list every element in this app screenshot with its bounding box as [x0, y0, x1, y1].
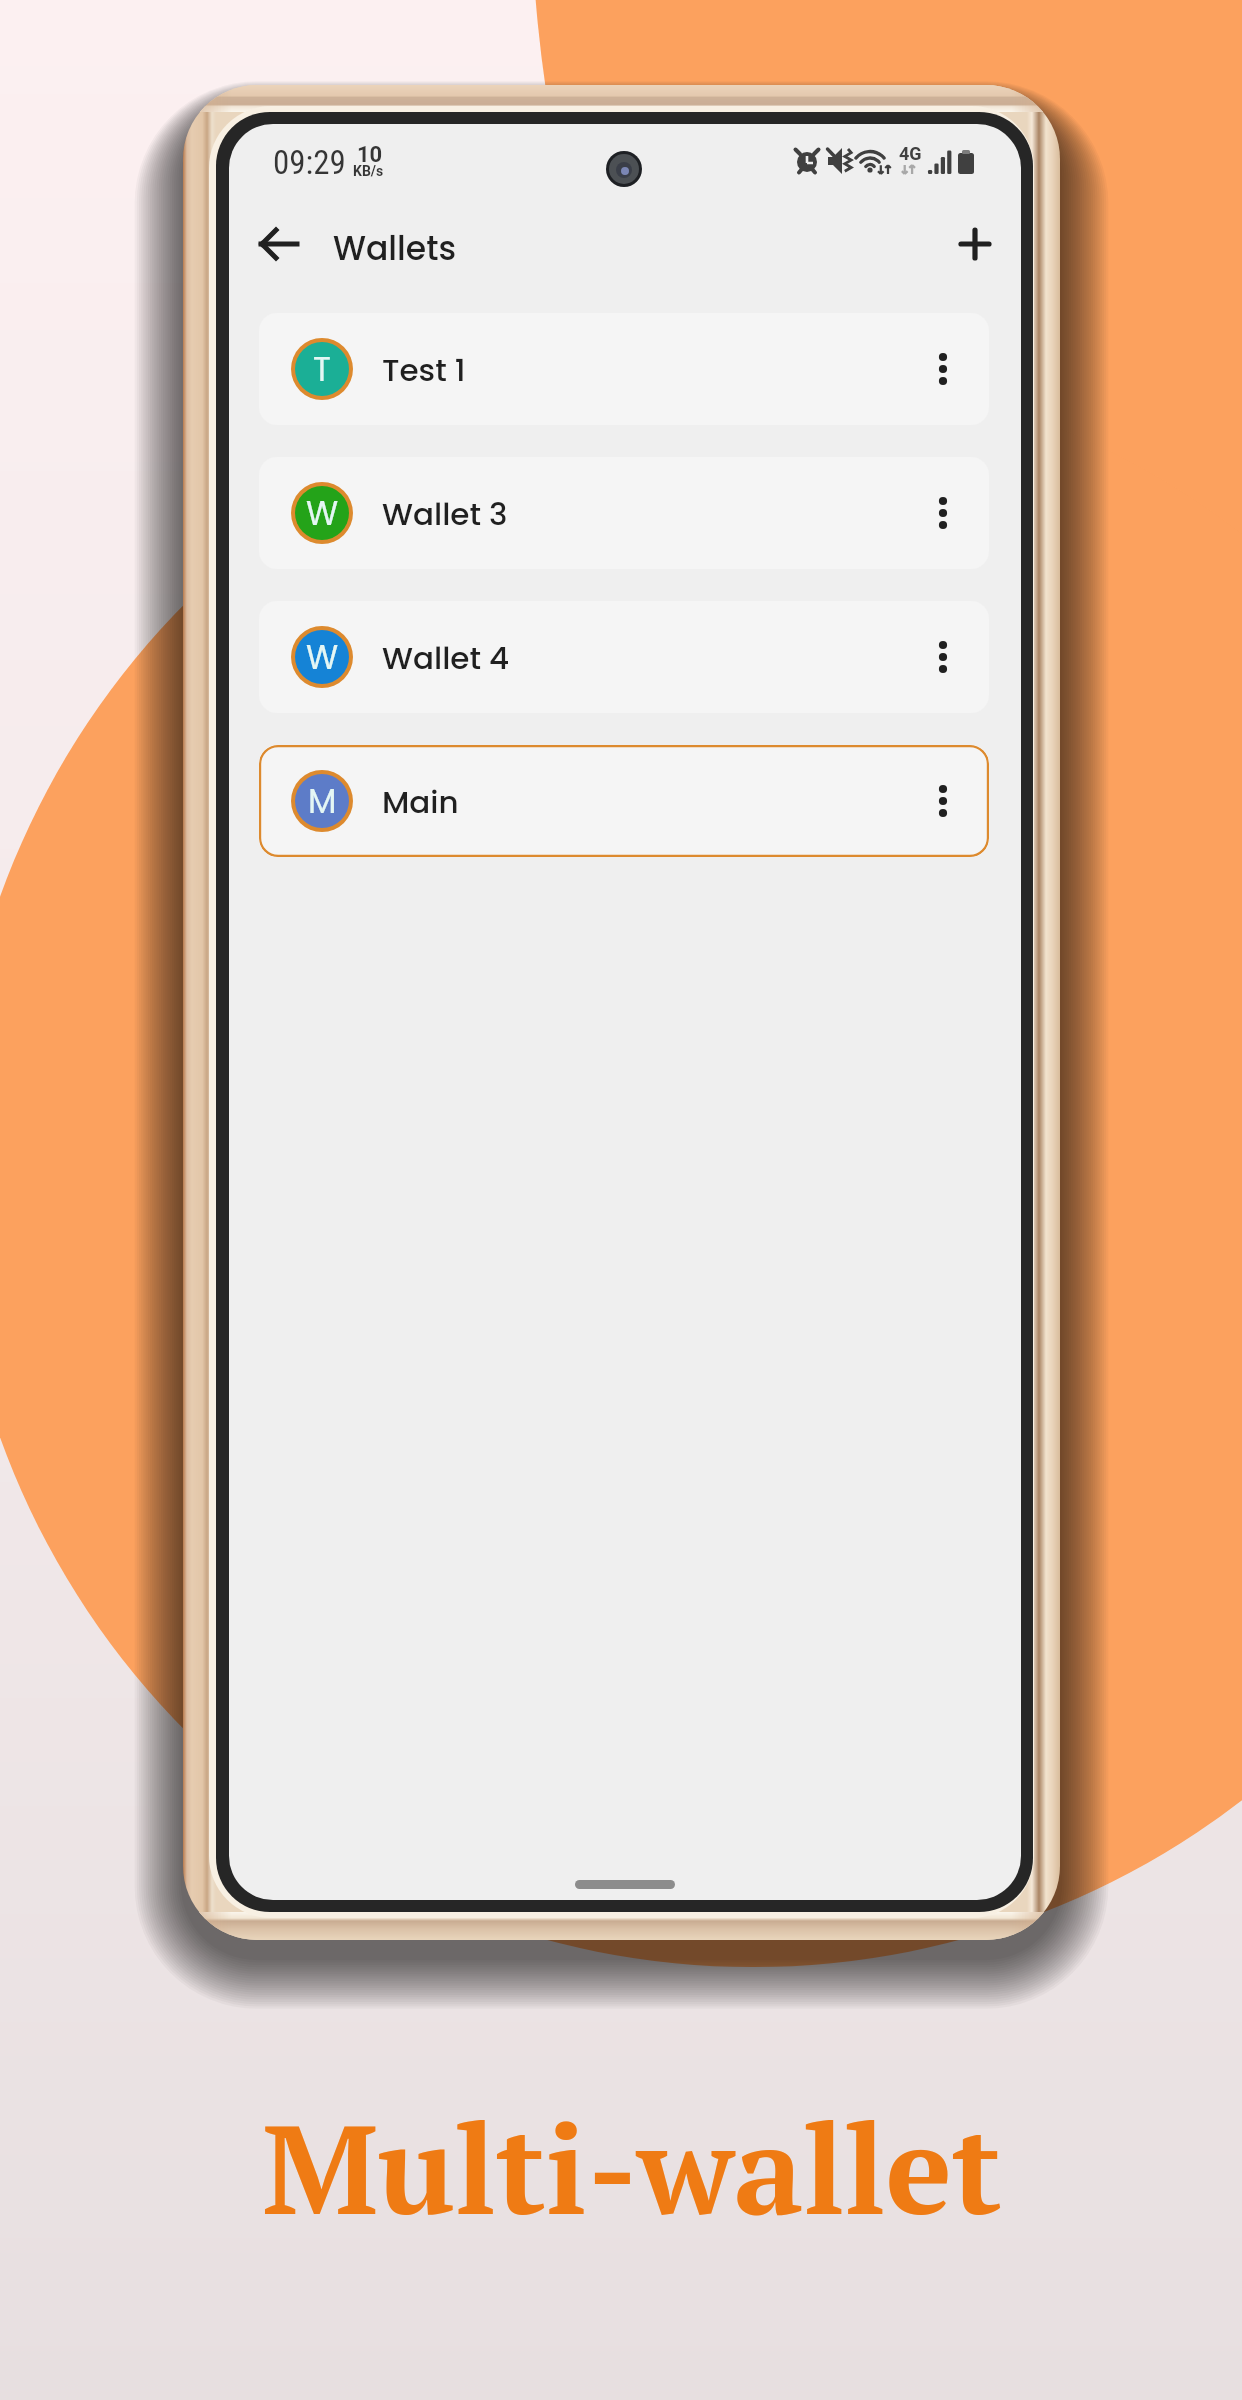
button[interactable]: T [259, 313, 989, 425]
staticText: Multi-wallet [262, 2085, 1002, 2249]
button[interactable]: W [259, 457, 989, 569]
button[interactable]: More options [911, 769, 975, 833]
staticText: Wallet 3 [382, 492, 508, 535]
staticText: Test 1 [382, 348, 466, 391]
staticText: W [306, 634, 339, 680]
button[interactable]: M [259, 745, 989, 857]
button[interactable]: W [259, 601, 989, 713]
staticText: Wallets [333, 225, 457, 271]
button[interactable]: Wallets [333, 225, 457, 271]
button[interactable]: Back [247, 212, 311, 276]
button[interactable]: Add wallet [943, 212, 1007, 276]
staticText: M [308, 778, 337, 824]
button[interactable]: More options [911, 337, 975, 401]
staticText: KB/s [353, 163, 384, 179]
button[interactable]: More options [911, 625, 975, 689]
staticText: Main [382, 780, 459, 823]
staticText: T [313, 346, 331, 392]
staticText: 4G [899, 143, 922, 164]
staticText: W [306, 490, 339, 536]
button[interactable]: More options [911, 481, 975, 545]
staticText: 09:29 [273, 143, 346, 182]
staticText: 10 [357, 142, 383, 168]
staticText: Wallet 4 [382, 636, 510, 679]
